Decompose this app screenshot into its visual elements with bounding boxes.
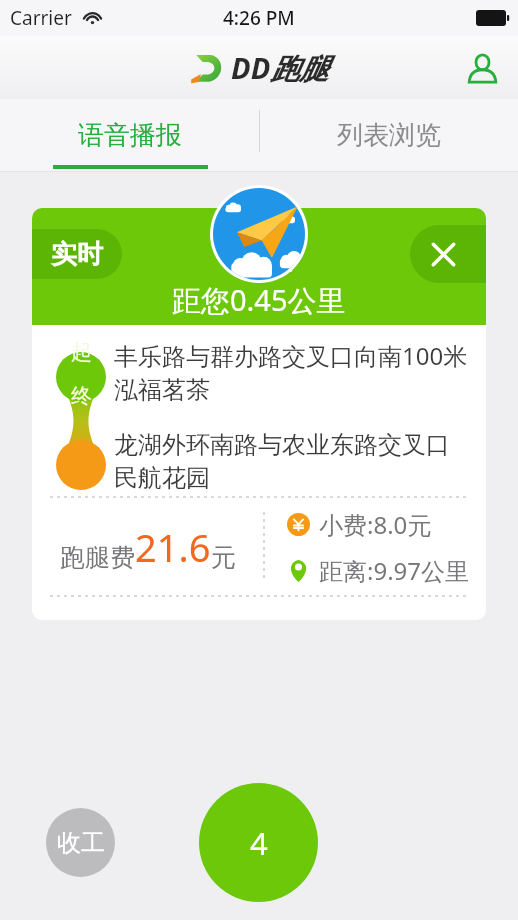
button[interactable]: 语音播报 xyxy=(0,99,259,172)
staticText: 元 xyxy=(211,542,236,573)
staticText: 龙湖外环南路与农业东路交叉口 民航花园 xyxy=(114,427,472,493)
staticText: 列表浏览 xyxy=(337,119,441,152)
staticText: 4 xyxy=(250,822,268,864)
staticText: Carrier xyxy=(10,5,72,31)
button[interactable]: 实时 xyxy=(32,229,122,279)
staticText: 21.6 xyxy=(135,521,211,573)
staticText: 帮我送 xyxy=(225,248,294,277)
staticText: 语音播报 xyxy=(78,119,182,152)
staticText: DD跑腿 xyxy=(231,48,329,88)
staticText: 4:26 PM xyxy=(223,5,295,31)
staticText: 跑腿费 xyxy=(60,542,135,573)
staticText: 丰乐路与群办路交叉口向南100米 泓福茗茶 xyxy=(114,339,472,405)
staticText: 小费:8.0元 xyxy=(319,508,432,541)
staticText: 距您0.45公里 xyxy=(172,280,346,320)
staticText: 收工 xyxy=(57,828,105,858)
staticText: 实时 xyxy=(51,238,103,271)
button[interactable]: Profile xyxy=(460,46,504,90)
staticText: 距离:9.97公里 xyxy=(319,554,470,587)
button[interactable]: 4 xyxy=(199,783,318,902)
button[interactable]: 收工 xyxy=(46,808,115,877)
button[interactable]: 实时 xyxy=(32,208,486,620)
staticText: 起 xyxy=(71,339,92,365)
button[interactable]: Close xyxy=(410,225,486,283)
staticText: 终 xyxy=(71,383,92,409)
button[interactable]: 列表浏览 xyxy=(259,99,518,172)
